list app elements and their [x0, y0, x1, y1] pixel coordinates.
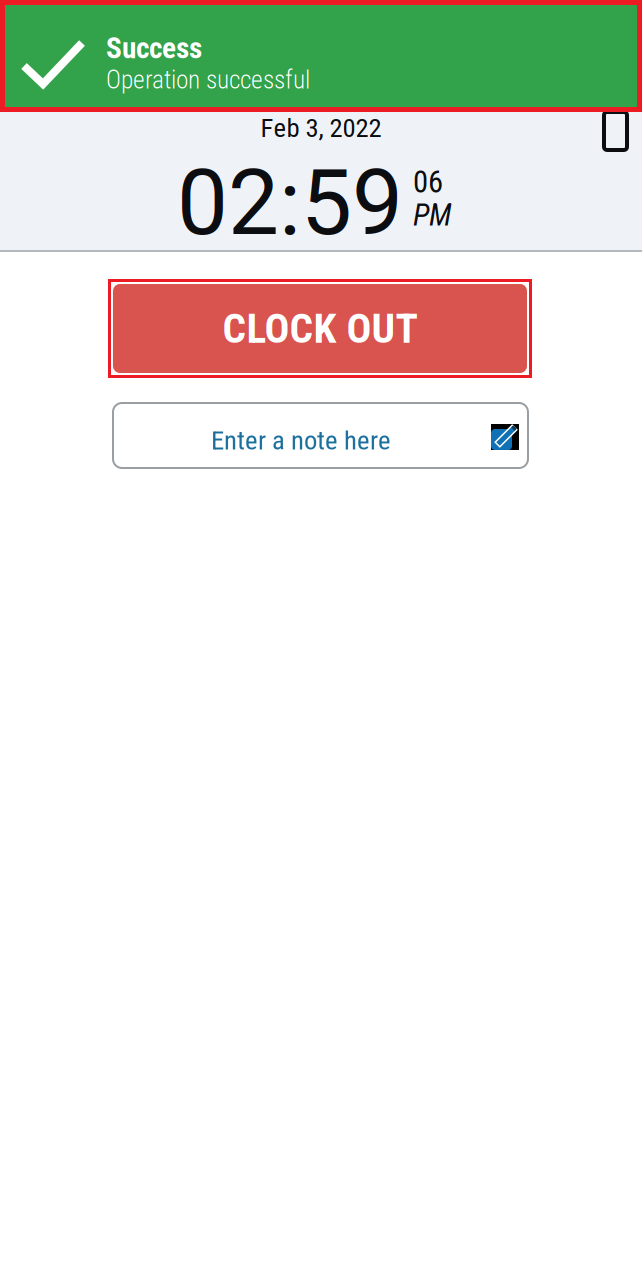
button[interactable]: Enter a note here: [113, 403, 528, 468]
staticText: Success: [106, 31, 202, 65]
staticText: PM: [413, 197, 451, 233]
staticText: Operation successful: [106, 65, 310, 95]
staticText: Enter a note here: [211, 425, 391, 456]
staticText: 06: [413, 164, 443, 200]
button[interactable]: CLOCK OUT: [108, 279, 532, 378]
staticText: CLOCK OUT: [222, 304, 417, 353]
staticText: 02:59: [177, 150, 403, 256]
staticText: Feb 3, 2022: [260, 112, 381, 144]
